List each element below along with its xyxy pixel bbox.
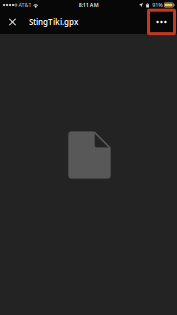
staticText: AT&T — [18, 1, 31, 9]
staticText: 91% — [152, 1, 162, 9]
button[interactable]: Close — [0, 10, 25, 34]
staticText: StingTiki.gpx — [29, 17, 78, 27]
button[interactable]: More options — [148, 10, 175, 34]
button[interactable]: StingTiki.gpx — [25, 10, 78, 34]
staticText: 8:11 AM — [79, 1, 99, 9]
